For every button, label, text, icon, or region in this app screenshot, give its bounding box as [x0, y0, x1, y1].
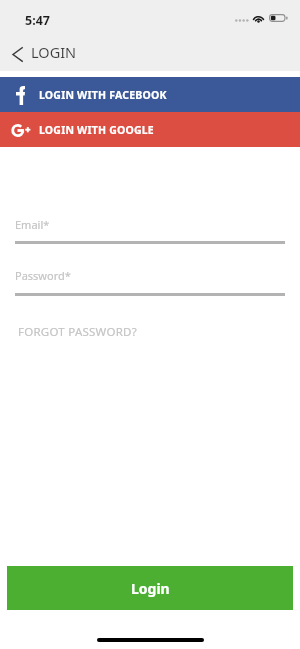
button[interactable]: LOGIN WITH FACEBOOK	[0, 77, 300, 112]
staticText: Password*	[15, 268, 71, 283]
staticText: 5:47	[25, 12, 50, 29]
button[interactable]: Login	[7, 566, 293, 610]
staticText: LOGIN WITH FACEBOOK	[39, 88, 167, 102]
button[interactable]: FORGOT PASSWORD?	[18, 324, 137, 340]
button[interactable]: Back	[2, 39, 32, 69]
staticText: LOGIN WITH GOOGLE	[39, 123, 154, 137]
button[interactable]: LOGIN WITH GOOGLE	[0, 112, 300, 147]
staticText: Login	[131, 579, 170, 598]
staticText: Email*	[15, 217, 50, 232]
staticText: FORGOT PASSWORD?	[18, 324, 137, 340]
staticText: LOGIN	[31, 42, 77, 62]
